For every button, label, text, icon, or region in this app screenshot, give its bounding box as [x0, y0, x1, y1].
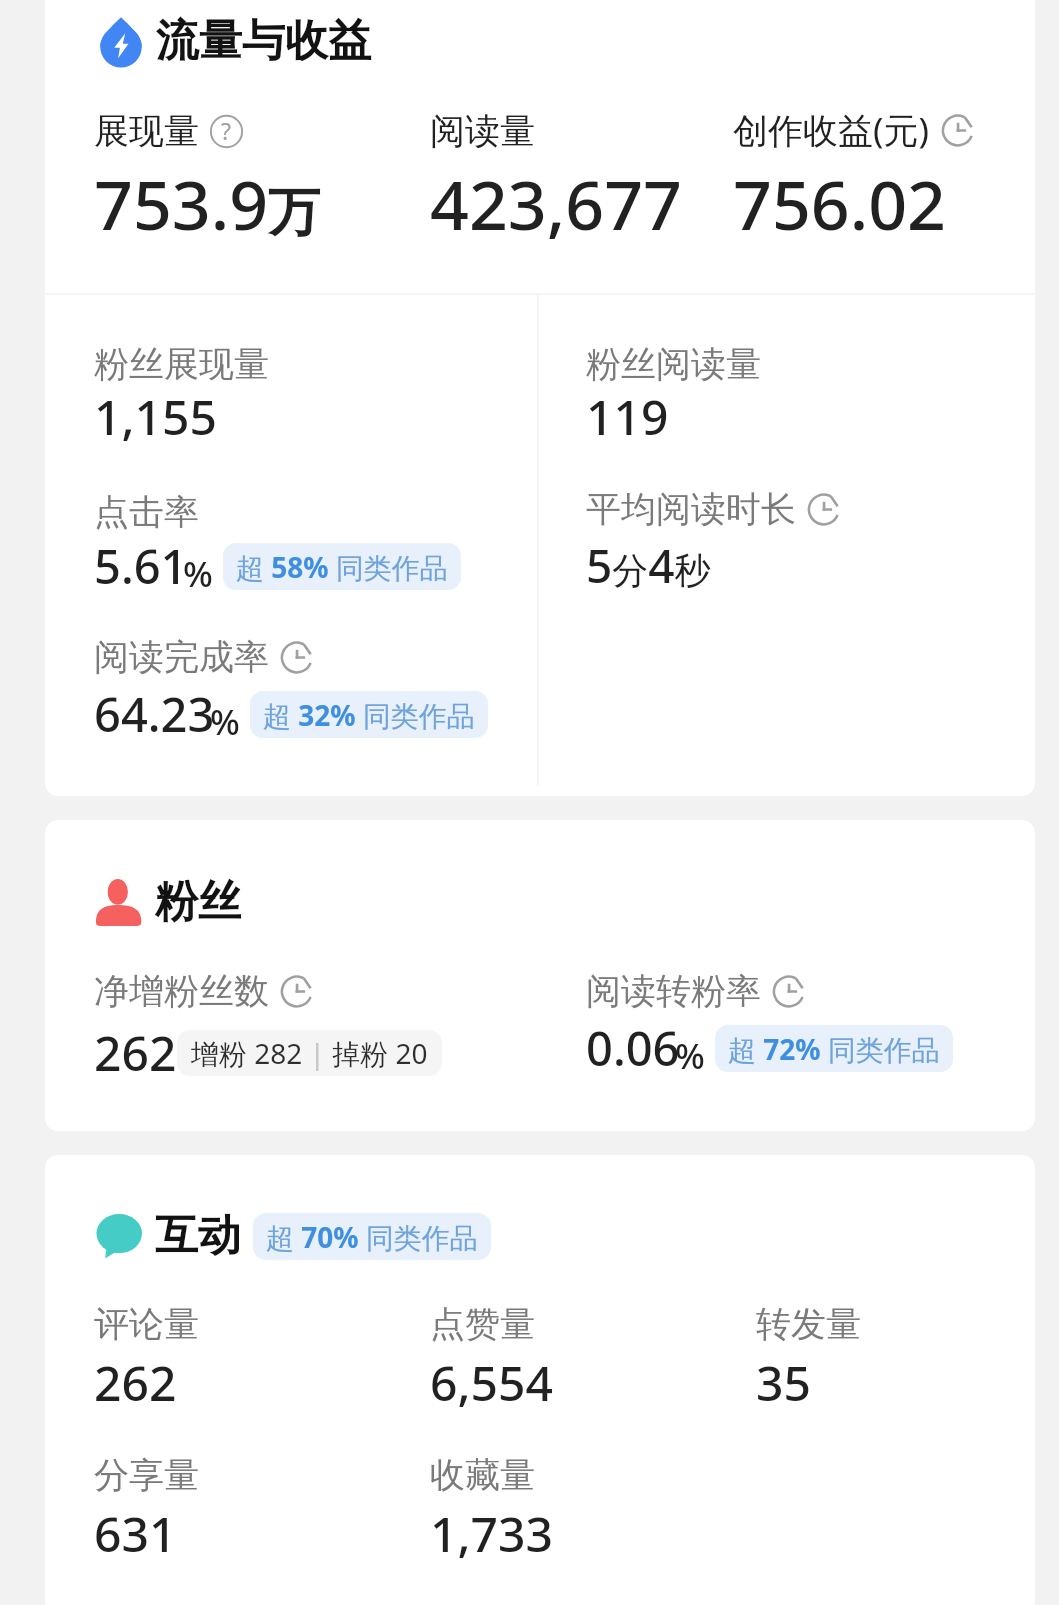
- button[interactable]: 转发量: [756, 1302, 861, 1346]
- staticText: 评论量: [94, 1302, 199, 1346]
- staticText: 753.9万: [94, 157, 321, 250]
- staticText: 423,677: [430, 157, 682, 250]
- staticText: 1,155: [94, 384, 217, 449]
- staticText: 阅读转粉率: [586, 969, 761, 1013]
- staticText: 5.61: [94, 534, 188, 598]
- button[interactable]: 超 72% 同类作品: [715, 1025, 953, 1072]
- staticText: 互动: [155, 1209, 241, 1263]
- staticText: 粉丝阅读量: [586, 342, 761, 386]
- staticText: 流量与收益: [156, 14, 371, 68]
- button[interactable]: 互动: [96, 1209, 491, 1263]
- staticText: 756.02: [733, 157, 946, 250]
- staticText: 增粉 282 | 掉粉 20: [191, 1034, 428, 1072]
- other: Recent data: [280, 974, 315, 1009]
- staticText: %: [183, 550, 213, 598]
- other: Recent data: [772, 974, 807, 1009]
- staticText: 阅读完成率: [94, 635, 269, 679]
- button[interactable]: 评论量: [94, 1302, 199, 1346]
- button[interactable]: 超 58% 同类作品: [223, 543, 461, 590]
- staticText: 点赞量: [430, 1302, 535, 1346]
- button[interactable]: 创作收益(元): [733, 106, 976, 154]
- staticText: 粉丝: [155, 875, 241, 929]
- staticText: 0.06: [586, 1016, 680, 1080]
- staticText: 超 32% 同类作品: [263, 696, 475, 734]
- staticText: 转发量: [756, 1302, 861, 1346]
- staticText: 35: [756, 1350, 811, 1415]
- staticText: 5分4秒: [586, 534, 711, 597]
- staticText: 超 70% 同类作品: [266, 1218, 478, 1256]
- button[interactable]: 收藏量: [430, 1453, 535, 1497]
- button[interactable]: 阅读完成率: [94, 635, 315, 679]
- button[interactable]: 点赞量: [430, 1302, 535, 1346]
- other: Recent data: [941, 113, 976, 148]
- staticText: 超 72% 同类作品: [728, 1030, 940, 1068]
- button[interactable]: 点击率: [94, 490, 199, 534]
- button[interactable]: 阅读量: [430, 109, 535, 153]
- staticText: 收藏量: [430, 1453, 535, 1497]
- other: Recent data: [807, 492, 842, 527]
- button[interactable]: 粉丝阅读量: [586, 342, 761, 386]
- staticText: 超 58% 同类作品: [236, 548, 448, 586]
- staticText: %: [210, 698, 240, 746]
- other: Recent data: [280, 640, 315, 675]
- button[interactable]: 展现量: [94, 109, 243, 153]
- staticText: 净增粉丝数: [94, 969, 269, 1013]
- button[interactable]: 增粉 282 | 掉粉 20: [177, 1030, 442, 1076]
- staticText: %: [675, 1032, 705, 1080]
- staticText: 631: [94, 1501, 177, 1566]
- staticText: 64.23: [94, 682, 215, 746]
- staticText: 阅读量: [430, 109, 535, 153]
- staticText: ?: [221, 115, 232, 146]
- button[interactable]: 平均阅读时长: [586, 487, 842, 531]
- button[interactable]: 超 32% 同类作品: [250, 691, 488, 738]
- button[interactable]: 流量与收益: [96, 14, 371, 68]
- staticText: 1,733: [430, 1501, 553, 1566]
- staticText: 262: [94, 1020, 177, 1085]
- staticText: 创作收益(元): [733, 106, 930, 154]
- staticText: 展现量: [94, 109, 199, 153]
- button[interactable]: 粉丝: [95, 875, 241, 929]
- button[interactable]: 粉丝展现量: [94, 342, 269, 386]
- staticText: 119: [586, 384, 669, 449]
- staticText: 6,554: [430, 1350, 553, 1415]
- other: More info: [210, 115, 243, 148]
- button[interactable]: 超 70% 同类作品: [253, 1213, 491, 1260]
- button[interactable]: 分享量: [94, 1453, 199, 1497]
- staticText: 粉丝展现量: [94, 342, 269, 386]
- staticText: 点击率: [94, 490, 199, 534]
- button[interactable]: 净增粉丝数: [94, 969, 315, 1013]
- staticText: 262: [94, 1350, 177, 1415]
- button[interactable]: 阅读转粉率: [586, 969, 807, 1013]
- staticText: 平均阅读时长: [586, 487, 796, 531]
- staticText: 分享量: [94, 1453, 199, 1497]
